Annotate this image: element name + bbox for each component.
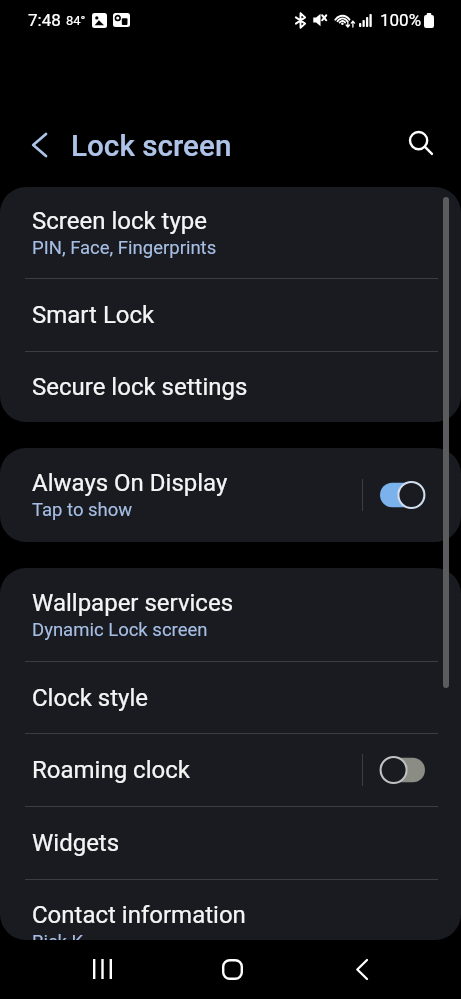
button[interactable]: Contact information <box>0 880 461 940</box>
staticText: Secure lock settings <box>32 373 248 401</box>
staticText: Always On Display <box>32 469 228 497</box>
button[interactable]: Home <box>188 944 276 994</box>
button[interactable]: Recent apps <box>59 944 146 994</box>
staticText: Wallpaper services <box>32 589 234 617</box>
button[interactable]: Switch on <box>363 472 461 518</box>
button[interactable]: Clock style <box>0 662 461 733</box>
staticText: Widgets <box>32 829 120 857</box>
staticText: 7:48 <box>28 10 61 30</box>
button[interactable]: Switch off <box>363 747 461 793</box>
button[interactable]: Navigate up <box>11 117 67 173</box>
button[interactable]: Smart Lock <box>0 279 461 351</box>
button[interactable]: Back <box>318 944 405 994</box>
button[interactable]: Widgets <box>0 807 461 879</box>
staticText: Clock style <box>32 684 148 712</box>
button[interactable]: Always On Display <box>0 448 461 542</box>
staticText: PIN, Face, Fingerprints <box>32 237 217 259</box>
button[interactable]: Secure lock settings <box>0 352 461 422</box>
staticText: Dynamic Lock screen <box>32 619 208 641</box>
button[interactable]: Search <box>391 114 447 170</box>
staticText: Tap to show <box>32 499 133 521</box>
staticText: 100% <box>380 10 422 30</box>
staticText: Screen lock type <box>32 207 207 235</box>
button[interactable]: Roaming clock <box>0 734 461 806</box>
staticText: 84° <box>66 13 86 28</box>
staticText: Smart Lock <box>32 301 155 329</box>
staticText: Contact information <box>32 901 246 929</box>
staticText: Roaming clock <box>32 756 190 784</box>
button[interactable]: Wallpaper services <box>0 568 461 661</box>
button[interactable]: Screen lock type <box>0 187 461 278</box>
staticText: Rick K <box>32 931 84 940</box>
staticText: Lock screen <box>71 129 232 164</box>
